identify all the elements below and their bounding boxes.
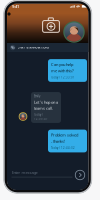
staticText: Problem solved <box>51 132 78 137</box>
staticText: Today / <box>34 113 43 116</box>
staticText: me with this? <box>51 68 74 73</box>
staticText: Today / 12:33:01 <box>51 76 75 79</box>
staticText: Let's hop on a <box>34 100 58 105</box>
staticText: 9:41 <box>12 4 19 9</box>
button[interactable]: Participant video <box>62 20 85 43</box>
staticText: 12:35:47 <box>34 117 48 120</box>
staticText: CHAT & ANNOTATIONS <box>18 46 49 49</box>
staticText: teams call. <box>34 105 53 111</box>
staticText: Can you help <box>51 62 73 67</box>
staticText: Emily <box>34 94 40 98</box>
button[interactable]: Send message <box>73 168 86 181</box>
staticText: Enter message <box>11 170 37 175</box>
staticText: Today / 12:44:32 <box>51 146 75 150</box>
button[interactable]: Add photo <box>40 15 62 35</box>
button[interactable]: CHAT & ANNOTATIONS <box>7 43 88 52</box>
button[interactable]: Enter message <box>11 170 72 177</box>
staticText: - thanks! <box>51 138 65 144</box>
